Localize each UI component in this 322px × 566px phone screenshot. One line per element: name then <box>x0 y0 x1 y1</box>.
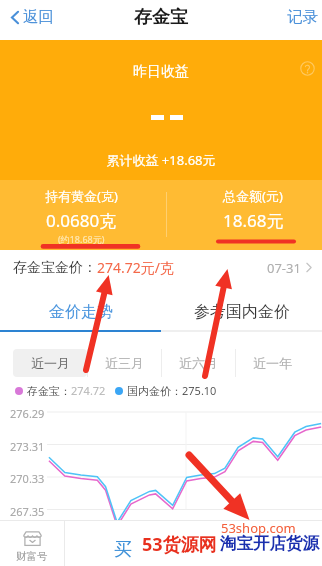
staticText: 270.33 <box>10 471 45 486</box>
button[interactable]: 近三月 <box>87 349 161 377</box>
staticText: 累计收益 +18.68元 <box>0 151 322 169</box>
staticText: 07-31 <box>267 259 301 277</box>
staticText: 53shop.com <box>221 519 296 537</box>
staticText: 金价走势 <box>49 302 113 322</box>
staticText: 274.72 <box>71 383 106 398</box>
staticText: 昨日收益 <box>0 63 322 81</box>
staticText: 存金宝金价： <box>13 259 97 277</box>
staticText: 存金宝 <box>134 6 188 29</box>
staticText: 18.68元 <box>223 209 284 232</box>
button[interactable]: 近六月 <box>161 349 235 377</box>
staticText: 财富号 <box>16 550 48 563</box>
button[interactable]: 存金宝金价： <box>0 250 322 285</box>
staticText: 274.72元/克 <box>97 258 174 277</box>
staticText: 总金额(元) <box>223 187 283 205</box>
staticText: 273.31 <box>10 439 45 454</box>
button[interactable]: 参考国内金价 <box>161 285 322 330</box>
button[interactable]: 返回 <box>0 2 66 32</box>
staticText: (约18.68元) <box>58 233 105 245</box>
button[interactable]: 财富号 <box>0 520 64 565</box>
staticText: 买 <box>114 538 132 561</box>
staticText: 0.0680克 <box>46 209 117 232</box>
staticText: 返回 <box>23 7 54 27</box>
button[interactable]: 记录 <box>275 2 322 32</box>
staticText: 近一月 <box>31 355 70 371</box>
staticText: 淘宝开店货源 <box>220 533 319 554</box>
staticText: 近一年 <box>253 355 292 371</box>
staticText: 53货源网 <box>142 532 217 557</box>
button[interactable]: 帮助 <box>300 61 315 76</box>
button[interactable]: 买 <box>65 521 322 566</box>
button[interactable]: 近一年 <box>235 349 309 377</box>
staticText: 近三月 <box>105 355 144 371</box>
staticText: 记录 <box>287 7 318 27</box>
staticText: 近六月 <box>179 355 218 371</box>
staticText: 存金宝： <box>27 384 71 398</box>
staticText: 持有黄金(克) <box>45 187 118 205</box>
staticText: 参考国内金价 <box>194 302 290 322</box>
staticText: 267.35 <box>10 504 45 519</box>
button[interactable]: 金价走势 <box>0 285 161 330</box>
staticText: 276.29 <box>10 406 45 421</box>
staticText: 国内金价：275.10 <box>127 383 217 398</box>
button[interactable]: 近一月 <box>13 349 87 377</box>
